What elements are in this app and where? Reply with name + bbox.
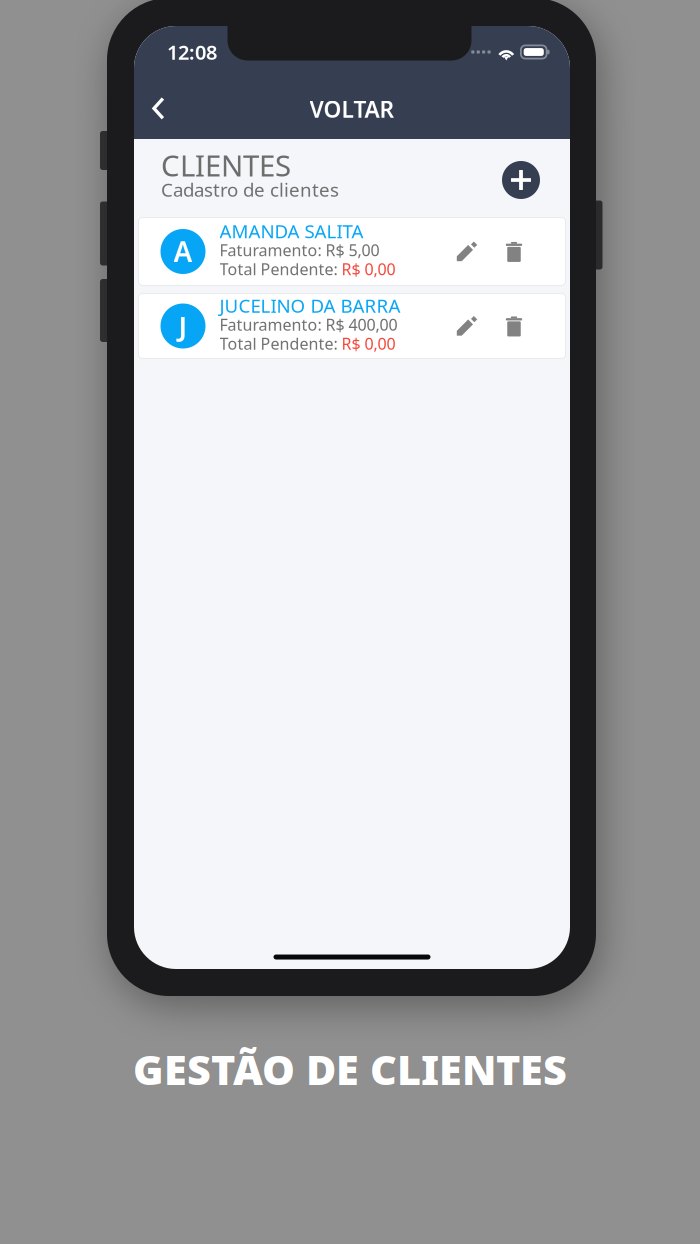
staticText: J xyxy=(178,307,187,345)
staticText: VOLTAR xyxy=(309,94,394,124)
staticText: AMANDA SALITA xyxy=(219,219,363,243)
staticText: R$ 0,00 xyxy=(341,258,395,280)
staticText: CLIENTES xyxy=(161,145,291,184)
button[interactable]: A xyxy=(138,217,565,285)
button[interactable]: Adicionar cliente xyxy=(497,156,545,204)
staticText: Total Pendente: xyxy=(219,258,341,280)
staticText: GESTÃO DE CLIENTES xyxy=(133,1042,567,1096)
staticText: A xyxy=(173,233,192,270)
button[interactable]: Voltar xyxy=(135,85,181,131)
button[interactable]: J xyxy=(138,293,565,358)
staticText: Total Pendente: xyxy=(219,333,341,354)
staticText: Cadastro de clientes xyxy=(161,177,339,202)
staticText: JUCELINO DA BARRA xyxy=(219,293,400,318)
staticText: Faturamento: R$ 400,00 xyxy=(219,314,397,335)
staticText: 12:08 xyxy=(167,39,217,65)
staticText: R$ 0,00 xyxy=(341,333,395,354)
staticText: Faturamento: R$ 5,00 xyxy=(219,239,379,261)
